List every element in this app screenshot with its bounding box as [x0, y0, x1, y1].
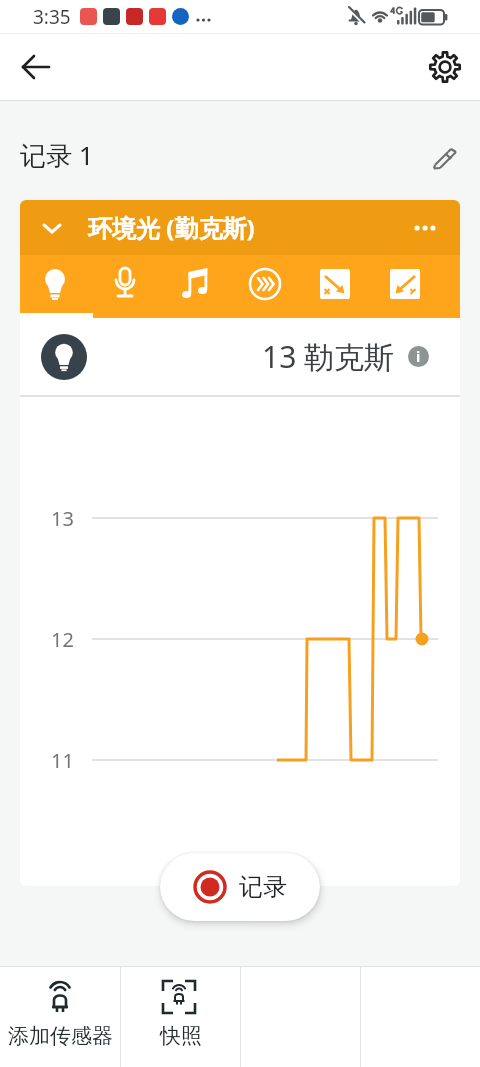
staticText: 13	[51, 505, 74, 531]
staticText: 12	[51, 626, 74, 652]
button[interactable]	[14, 45, 58, 89]
button[interactable]: 记录	[160, 853, 320, 921]
staticText: i	[416, 347, 421, 366]
staticText: 记录 1	[20, 137, 94, 173]
staticText: 11	[51, 747, 74, 773]
button[interactable]	[160, 255, 230, 313]
button[interactable]	[230, 255, 300, 313]
button[interactable]	[90, 255, 160, 313]
button[interactable]: 环境光 (勤克斯)	[20, 200, 460, 255]
staticText: 记录	[239, 872, 287, 902]
button[interactable]: i	[408, 346, 429, 367]
staticText: 添加传感器	[8, 1023, 113, 1049]
staticText: 3:35	[33, 4, 71, 30]
staticText: 环境光 (勤克斯)	[88, 211, 255, 244]
staticText: 快照	[160, 1023, 202, 1049]
button[interactable]	[423, 45, 467, 89]
staticText: 13 勒克斯	[262, 336, 395, 377]
button[interactable]	[424, 136, 464, 176]
button[interactable]	[300, 255, 370, 313]
button[interactable]	[370, 255, 440, 313]
button[interactable]: 添加传感器	[0, 967, 120, 1067]
button[interactable]	[20, 255, 90, 313]
button[interactable]: 快照	[121, 967, 240, 1067]
